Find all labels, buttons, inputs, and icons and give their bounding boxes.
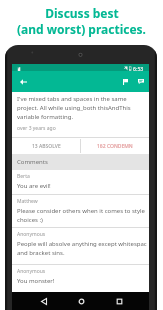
button[interactable]: Berta	[12, 170, 149, 194]
button[interactable]: Back	[22, 292, 66, 310]
staticText: over 3 years ago	[17, 125, 56, 132]
staticText: Please consider others when it comes to …	[17, 207, 145, 223]
staticText: 13 ABSOLVE	[32, 143, 61, 150]
staticText: (and worst) practices.	[17, 21, 146, 37]
button[interactable]: Recent apps	[97, 292, 141, 310]
staticText: You are evil!	[17, 182, 51, 190]
staticText: I've mixed tabs and spaces in the same p…	[17, 95, 131, 121]
button[interactable]: Flag	[116, 71, 135, 92]
button[interactable]: Back	[14, 71, 32, 92]
button[interactable]: Matthew	[12, 195, 149, 227]
staticText: Anonymous	[17, 231, 46, 238]
staticText: 6:53	[133, 65, 144, 72]
button[interactable]: Anonymous	[12, 265, 149, 293]
staticText: Matthew	[17, 198, 38, 205]
staticText: You monster!	[17, 277, 55, 285]
button[interactable]: 13 ABSOLVE	[12, 138, 80, 154]
staticText: Berta	[17, 173, 30, 180]
button[interactable]: Comments	[131, 71, 150, 92]
staticText: People will absolve anything except whit…	[17, 240, 147, 256]
button[interactable]: 162 CONDEMN	[81, 138, 149, 154]
button[interactable]: Anonymous	[12, 228, 149, 264]
button[interactable]: Home	[59, 292, 103, 310]
staticText: Discuss best	[45, 5, 119, 21]
staticText: Comments	[17, 158, 48, 166]
staticText: 162 CONDEMN	[97, 143, 133, 150]
staticText: Anonymous	[17, 268, 46, 275]
